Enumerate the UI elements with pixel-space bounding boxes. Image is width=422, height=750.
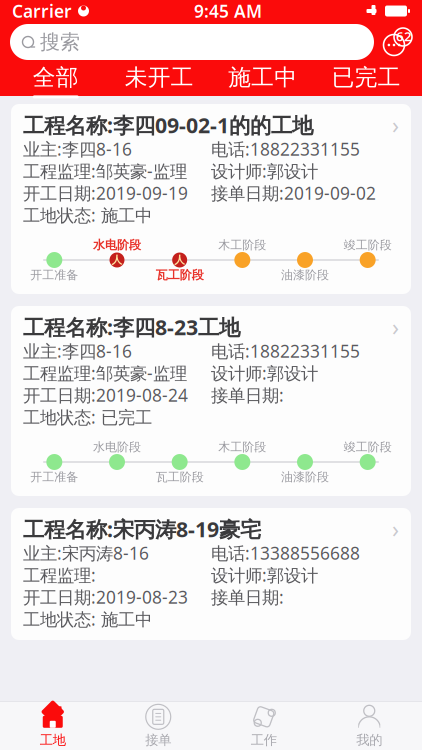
button[interactable]: 工作: [211, 702, 316, 750]
staticText: [178, 439, 181, 455]
staticText: 工地状态: 施工中: [23, 607, 152, 630]
staticText: 设计师:郭设计: [211, 563, 318, 586]
staticText: 接单日期:: [211, 383, 284, 406]
staticText: [115, 469, 118, 485]
button[interactable]: 工地: [0, 702, 105, 750]
staticText: [53, 439, 56, 455]
button[interactable]: 已完工: [314, 62, 418, 96]
staticText: 业主:李四8-16: [23, 339, 132, 362]
staticText: 油漆阶段: [281, 268, 329, 282]
button[interactable]: 我的: [316, 702, 422, 750]
staticText: 开工准备: [30, 268, 78, 282]
staticText: 接单日期:: [211, 585, 284, 608]
staticText: 瓦工阶段: [156, 268, 204, 282]
staticText: [366, 267, 369, 283]
staticText: [53, 237, 56, 253]
staticText: 油漆阶段: [281, 470, 329, 484]
staticText: 接单日期:2019-09-02: [211, 181, 376, 204]
staticText: 木工阶段: [218, 440, 266, 454]
staticText: ›: [392, 312, 399, 342]
staticText: 瓦工阶段: [156, 470, 204, 484]
staticText: 开工日期:2019-08-24: [23, 383, 188, 406]
staticText: 开工日期:2019-09-19: [23, 181, 188, 204]
staticText: 工程监理:邹英豪-监理: [23, 159, 187, 182]
button[interactable]: 未开工: [107, 62, 211, 96]
staticText: 全部: [33, 64, 79, 91]
staticText: 施工中: [228, 64, 297, 91]
staticText: 接单: [145, 732, 171, 748]
staticText: 水电阶段: [93, 440, 141, 454]
staticText: 工地: [40, 732, 66, 748]
staticText: 9:45 AM: [194, 0, 262, 22]
staticText: 开工准备: [30, 470, 78, 484]
staticText: 业主:宋丙涛8-16: [23, 541, 149, 564]
staticText: 已完工: [332, 64, 401, 91]
staticText: 电话:13388556688: [211, 541, 360, 564]
button[interactable]: 接单: [105, 702, 211, 750]
staticText: 水电阶段: [93, 238, 141, 252]
staticText: 电话:18822331155: [211, 339, 360, 362]
button[interactable]: 全部: [4, 62, 107, 96]
staticText: 开工日期:2019-08-23: [23, 585, 188, 608]
staticText: 搜索: [40, 30, 80, 54]
staticText: 竣工阶段: [344, 440, 392, 454]
staticText: 工程名称:李四09-02-1的的工地: [23, 111, 313, 139]
staticText: 工作: [251, 732, 277, 748]
staticText: 工程监理:邹英豪-监理: [23, 361, 187, 384]
staticText: 人: [111, 253, 122, 266]
staticText: [241, 469, 244, 485]
staticText: [241, 267, 244, 283]
staticText: 竣工阶段: [344, 238, 392, 252]
staticText: 工程监理:: [23, 563, 96, 586]
staticText: 人: [174, 253, 185, 266]
staticText: [366, 469, 369, 485]
staticText: [303, 237, 306, 253]
staticText: 未开工: [125, 64, 194, 91]
staticText: 业主:李四8-16: [23, 137, 132, 160]
staticText: 工程名称:宋丙涛8-19豪宅: [23, 515, 261, 543]
button[interactable]: 工程名称:李四09-02-1的的工地: [11, 104, 411, 294]
staticText: ›: [392, 514, 399, 544]
staticText: 设计师:郭设计: [211, 159, 318, 182]
staticText: Carrier: [12, 0, 72, 22]
staticText: ›: [392, 110, 399, 140]
staticText: 62: [396, 27, 412, 45]
staticText: 电话:18822331155: [211, 137, 360, 160]
staticText: 工地状态: 已完工: [23, 405, 152, 428]
button[interactable]: 消息: [374, 22, 418, 62]
button[interactable]: 工程名称:宋丙涛8-19豪宅: [11, 508, 411, 640]
staticText: 木工阶段: [218, 238, 266, 252]
staticText: [178, 237, 181, 253]
staticText: 工程名称:李四8-23工地: [23, 313, 240, 341]
staticText: [115, 267, 118, 283]
staticText: 工地状态: 施工中: [23, 203, 152, 226]
button[interactable]: 工程名称:李四8-23工地: [11, 306, 411, 496]
staticText: 我的: [356, 732, 382, 748]
button[interactable]: 施工中: [211, 62, 314, 96]
staticText: [303, 439, 306, 455]
staticText: 设计师:郭设计: [211, 361, 318, 384]
button[interactable]: 搜索: [10, 24, 374, 60]
